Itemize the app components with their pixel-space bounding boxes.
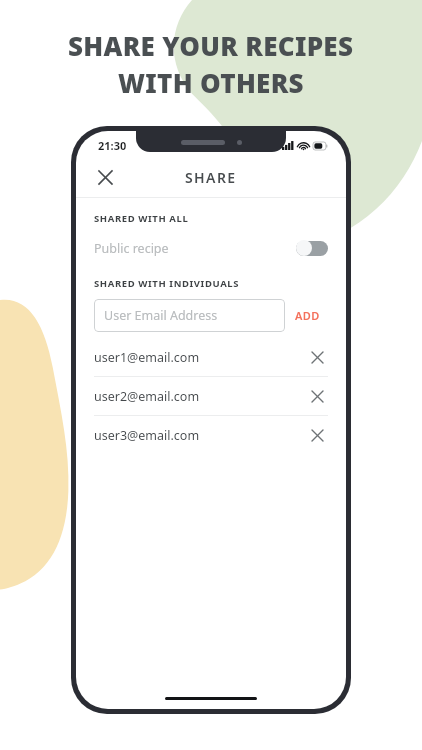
- button[interactable]: user1@email.com: [76, 338, 346, 376]
- staticText: user1@email.com: [94, 349, 200, 366]
- staticText: 21:30: [98, 138, 127, 153]
- staticText: WITH OTHERS: [118, 65, 304, 100]
- button[interactable]: Remove user1@email.com: [304, 344, 330, 370]
- button[interactable]: Public recipe: [76, 235, 346, 261]
- staticText: ADD: [295, 308, 320, 323]
- staticText: User Email Address: [104, 307, 218, 324]
- staticText: user2@email.com: [94, 388, 200, 405]
- button[interactable]: User Email Address: [94, 299, 285, 332]
- button[interactable]: Remove user3@email.com: [304, 422, 330, 448]
- staticText: SHARED WITH INDIVIDUALS: [94, 277, 240, 290]
- button[interactable]: Public recipe toggle: [296, 240, 328, 256]
- staticText: SHARED WITH ALL: [94, 212, 189, 225]
- button[interactable]: ADD: [285, 300, 330, 331]
- button[interactable]: Remove user2@email.com: [304, 383, 330, 409]
- staticText: Public recipe: [94, 240, 169, 257]
- button[interactable]: user3@email.com: [76, 416, 346, 454]
- button[interactable]: Close: [88, 160, 122, 194]
- button[interactable]: user2@email.com: [76, 377, 346, 415]
- staticText: SHARE: [185, 168, 237, 187]
- staticText: user3@email.com: [94, 427, 200, 444]
- staticText: SHARE YOUR RECIPES: [68, 28, 354, 63]
